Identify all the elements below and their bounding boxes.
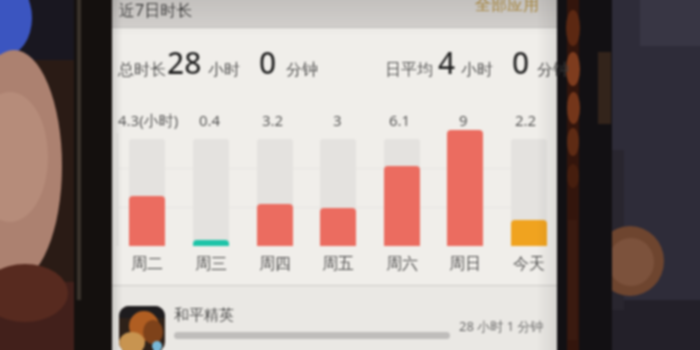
staticText: 4.3(小时) [118,110,179,130]
button[interactable]: 全部应用 [475,0,539,15]
button[interactable] [112,0,557,27]
staticText: 分钟 [286,60,318,80]
staticText: 分钟 [537,60,569,80]
staticText: 和平精英 [174,306,234,325]
staticText: 周三 [195,254,227,274]
staticText: 周五 [322,254,354,274]
staticText: 28 [167,42,202,83]
staticText: 9 [459,110,468,130]
button[interactable]: 和平精英 [112,285,557,350]
staticText: 0 [259,42,277,83]
staticText: 小时 [208,60,240,80]
staticText: 全部应用 [475,0,539,15]
staticText: 3 [333,110,342,130]
staticText: 今天 [513,254,545,274]
staticText: 2.2 [515,110,537,130]
staticText: 3.2 [262,110,284,130]
staticText: 周日 [449,254,481,274]
staticText: 0 [512,42,530,83]
staticText: 日平均 [385,60,433,80]
staticText: 周二 [131,254,163,274]
staticText: 周六 [386,254,418,274]
staticText: 小时 [461,60,493,80]
staticText: 6.1 [389,110,411,130]
staticText: 0.4 [199,110,221,130]
staticText: 周四 [259,254,291,274]
staticText: 近7日时长 [119,0,193,21]
staticText: 总时长 [118,60,166,80]
staticText: 4 [438,42,456,83]
staticText: 28 小时 1 分钟 [459,317,544,335]
